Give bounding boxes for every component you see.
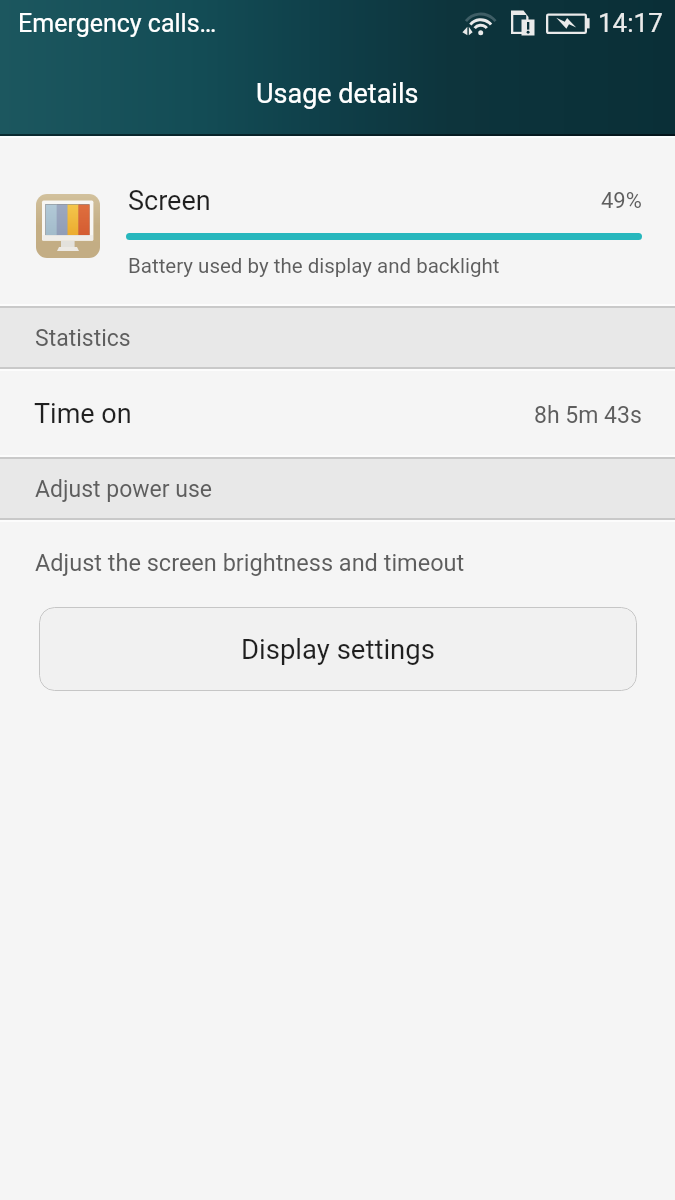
staticText: Statistics — [35, 325, 131, 352]
staticText: Adjust the screen brightness and timeout — [35, 549, 465, 577]
other: SIM card warning — [511, 10, 535, 36]
other: Battery charging — [546, 12, 590, 34]
staticText: Display settings — [241, 633, 435, 665]
staticText: 14:17 — [598, 8, 663, 38]
button[interactable]: Display settings — [39, 607, 637, 691]
staticText: Time on — [34, 398, 132, 430]
staticText: Screen — [128, 185, 211, 217]
button[interactable]: Time on — [0, 371, 675, 455]
staticText: Emergency calls… — [18, 9, 217, 38]
staticText: Usage details — [256, 78, 419, 110]
staticText: 8h 5m 43s — [534, 402, 642, 429]
staticText: Battery used by the display and backligh… — [128, 254, 500, 278]
other: Wi-Fi — [462, 12, 498, 38]
button[interactable]: Screen — [0, 136, 675, 304]
staticText: 49% — [601, 188, 642, 214]
staticText: Adjust power use — [35, 476, 213, 503]
